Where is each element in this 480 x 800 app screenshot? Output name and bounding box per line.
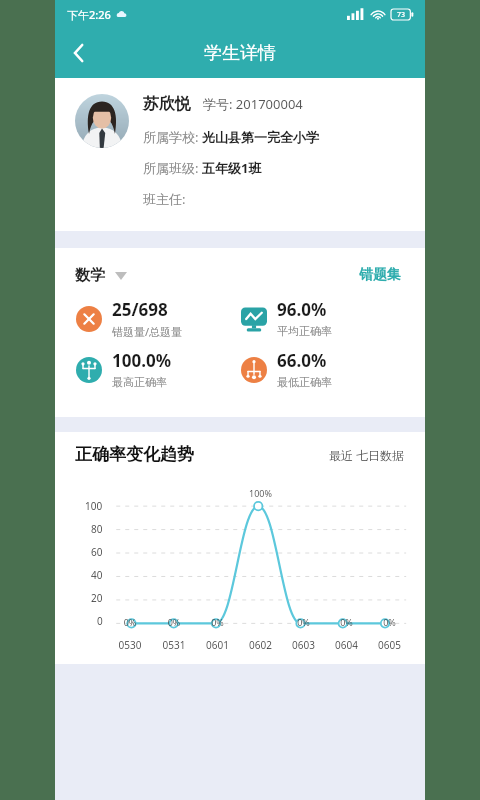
- staticText: 错题集: [359, 266, 401, 284]
- staticText: 最高正确率: [112, 375, 167, 389]
- staticText: 100: [85, 499, 103, 513]
- button[interactable]: 数学: [75, 266, 127, 285]
- staticText: 班主任:: [143, 190, 189, 208]
- button[interactable]: Back: [55, 29, 103, 77]
- staticText: 正确率变化趋势: [75, 444, 194, 465]
- staticText: 0605: [368, 638, 411, 652]
- staticText: 0%: [282, 616, 325, 628]
- staticText: 100%: [239, 487, 282, 499]
- staticText: 0%: [108, 616, 152, 628]
- staticText: 数学: [75, 266, 105, 285]
- staticText: 学生详情: [204, 42, 276, 65]
- staticText: 100.0%: [112, 349, 172, 372]
- staticText: 最近 七日数据: [329, 447, 405, 463]
- staticText: 96.0%: [277, 298, 327, 321]
- button[interactable]: 错题集: [355, 262, 405, 288]
- button[interactable]: 25/698: [75, 298, 240, 339]
- staticText: 73: [397, 10, 406, 20]
- staticText: 0: [97, 614, 103, 628]
- staticText: 光山县第一完全小学: [202, 129, 319, 145]
- staticText: 0530: [108, 638, 152, 652]
- staticText: 80: [91, 522, 103, 536]
- button[interactable]: 最近 七日数据: [329, 447, 405, 465]
- staticText: 0604: [325, 638, 368, 652]
- staticText: 25/698: [112, 298, 168, 321]
- staticText: 0602: [239, 638, 282, 652]
- staticText: 0%: [152, 616, 196, 628]
- staticText: 平均正确率: [277, 324, 332, 338]
- staticText: 错题量/总题量: [112, 324, 183, 339]
- button[interactable]: 66.0%: [240, 349, 405, 389]
- button[interactable]: 100.0%: [75, 349, 240, 389]
- staticText: [239, 616, 282, 628]
- staticText: 下午2:26: [67, 7, 111, 22]
- staticText: 60: [91, 545, 103, 559]
- staticText: 五年级1班: [202, 159, 262, 177]
- staticText: 最低正确率: [277, 375, 332, 389]
- staticText: 苏欣悦: [143, 94, 191, 114]
- button[interactable]: 96.0%: [240, 298, 405, 338]
- staticText: 学号: 201700004: [203, 95, 303, 113]
- staticText: 40: [91, 568, 103, 582]
- staticText: 66.0%: [277, 349, 327, 372]
- staticText: 0601: [196, 638, 239, 652]
- button[interactable]: 苏欣悦: [55, 78, 425, 231]
- staticText: 20: [91, 591, 103, 605]
- staticText: 0603: [282, 638, 325, 652]
- staticText: 0531: [152, 638, 196, 652]
- staticText: 所属班级:: [143, 159, 202, 177]
- staticText: 0%: [196, 616, 239, 628]
- staticText: 0%: [368, 616, 411, 628]
- staticText: 所属学校:: [143, 128, 202, 146]
- staticText: 0%: [325, 616, 368, 628]
